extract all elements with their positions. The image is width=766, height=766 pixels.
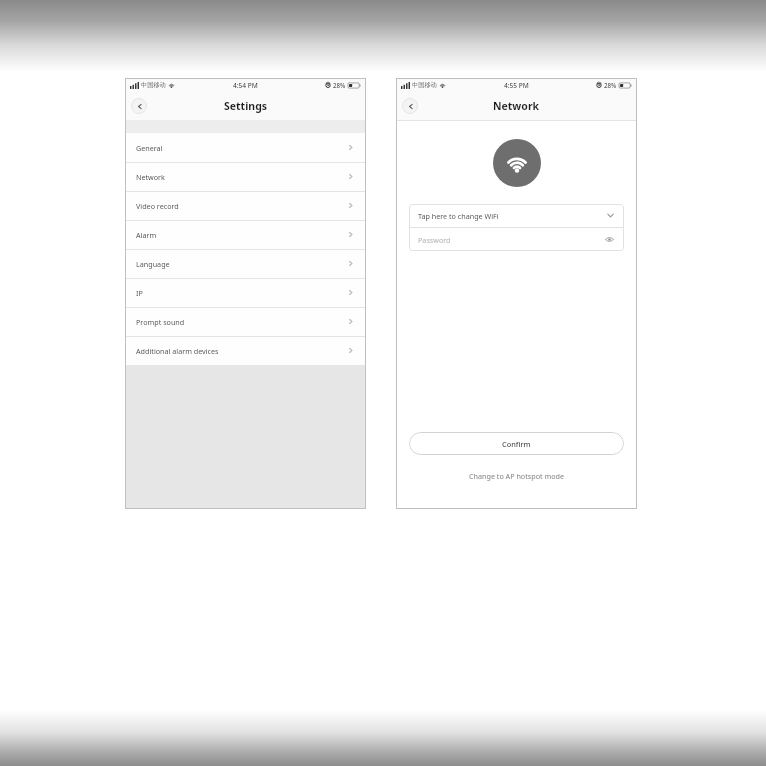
- button[interactable]: Show password: [604, 234, 615, 245]
- staticText: Network: [136, 172, 347, 182]
- staticText: Additional alarm devices: [136, 346, 347, 356]
- staticText: Language: [136, 259, 347, 269]
- staticText: 4:55 PM: [504, 81, 529, 90]
- staticText: IP: [136, 288, 347, 298]
- staticText: Change to AP hotspot mode: [469, 471, 565, 481]
- staticText: 28%: [604, 81, 617, 89]
- staticText: 中国移动: [412, 81, 437, 89]
- button[interactable]: Additional alarm devices: [125, 336, 366, 365]
- staticText: Video record: [136, 201, 347, 211]
- button[interactable]: Back: [402, 98, 418, 114]
- button[interactable]: Language: [125, 249, 366, 278]
- button[interactable]: IP: [125, 278, 366, 307]
- button[interactable]: Change to AP hotspot mode: [396, 471, 637, 481]
- staticText: Password: [418, 235, 604, 245]
- staticText: 4:54 PM: [233, 81, 258, 90]
- staticText: Alarm: [136, 230, 347, 240]
- staticText: Confirm: [502, 439, 531, 449]
- button[interactable]: Prompt sound: [125, 307, 366, 336]
- staticText: Network: [493, 99, 540, 113]
- staticText: Prompt sound: [136, 317, 347, 327]
- button[interactable]: Video record: [125, 191, 366, 220]
- staticText: Tap here to change WiFi: [418, 211, 606, 221]
- staticText: General: [136, 143, 347, 153]
- button[interactable]: General: [125, 133, 366, 162]
- other: WiFi: [493, 139, 541, 187]
- button[interactable]: Back: [131, 98, 147, 114]
- button[interactable]: Alarm: [125, 220, 366, 249]
- button[interactable]: Tap here to change WiFi: [409, 204, 624, 227]
- staticText: 28%: [333, 81, 346, 89]
- staticText: Settings: [224, 99, 268, 113]
- button[interactable]: Confirm: [409, 432, 624, 455]
- button[interactable]: Password: [409, 228, 624, 251]
- staticText: 中国移动: [141, 81, 166, 89]
- button[interactable]: Network: [125, 162, 366, 191]
